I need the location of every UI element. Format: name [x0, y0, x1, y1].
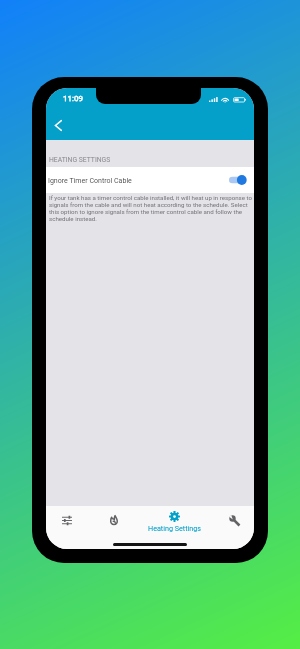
button[interactable]: Filters [48, 506, 86, 549]
staticText: 11:09 [63, 94, 83, 103]
staticText: Heating Settings [148, 524, 201, 532]
button[interactable]: Heating Settings [143, 506, 205, 549]
staticText: If your tank has a timer control cable i… [49, 194, 253, 222]
button[interactable]: Back [46, 113, 70, 137]
staticText: Ignore Timer Control Cable [48, 176, 132, 184]
button[interactable]: Boost [95, 506, 133, 549]
button[interactable]: Service [215, 506, 253, 549]
button[interactable]: Ignore Timer Control Cable [46, 167, 254, 193]
staticText: HEATING SETTINGS [49, 156, 111, 164]
